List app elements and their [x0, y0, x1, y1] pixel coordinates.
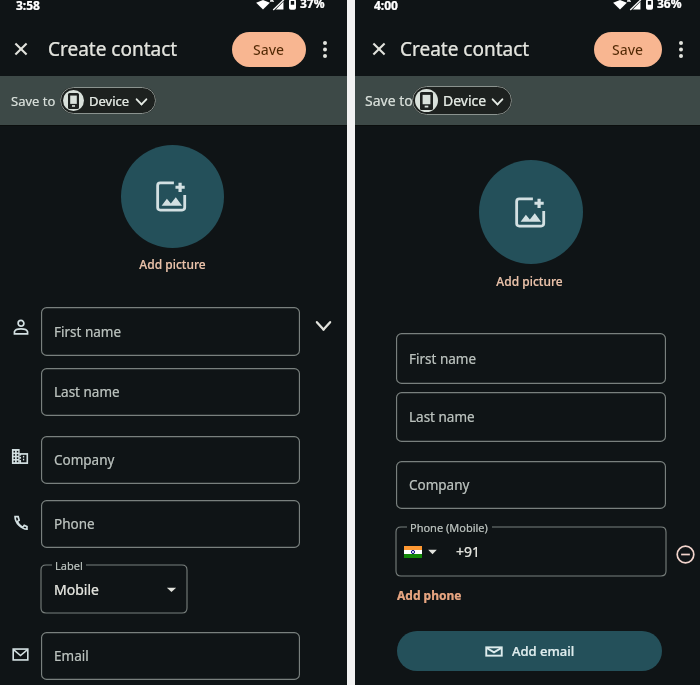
button[interactable]: First name: [396, 333, 666, 384]
staticText: Create contact: [48, 36, 178, 62]
button[interactable]: Save: [232, 32, 306, 67]
staticText: 37%: [300, 0, 325, 11]
staticText: Device: [89, 92, 130, 110]
button[interactable]: Label: [41, 565, 187, 613]
staticText: 3:58: [16, 0, 40, 13]
button[interactable]: Email: [41, 632, 300, 680]
button[interactable]: More options: [309, 33, 341, 65]
staticText: R: [627, 0, 631, 4]
staticText: 4:00: [374, 0, 398, 13]
button[interactable]: Close: [361, 31, 397, 67]
staticText: +91: [456, 542, 481, 561]
staticText: 36%: [657, 0, 682, 11]
button[interactable]: Close: [3, 31, 39, 67]
button[interactable]: Device: [60, 87, 156, 114]
staticText: Company: [54, 451, 115, 469]
staticText: R: [270, 0, 274, 4]
button[interactable]: Device: [412, 86, 512, 115]
staticText: Save to: [11, 92, 56, 110]
staticText: Last name: [54, 383, 120, 401]
button[interactable]: Add phone: [394, 583, 465, 607]
button[interactable]: Remove phone: [672, 541, 698, 567]
button[interactable]: First name: [41, 307, 300, 356]
staticText: Company: [409, 476, 470, 494]
staticText: Save: [612, 40, 644, 59]
button[interactable]: Expand name fields: [309, 312, 337, 340]
staticText: Add phone: [397, 587, 462, 603]
staticText: First name: [54, 323, 122, 341]
staticText: Add picture: [357, 273, 700, 289]
button[interactable]: Phone (Mobile): [396, 527, 666, 576]
staticText: Mobile: [54, 580, 99, 599]
staticText: Save: [253, 40, 285, 59]
staticText: Device: [443, 91, 487, 110]
staticText: Create contact: [400, 36, 530, 62]
button[interactable]: Company: [396, 461, 666, 509]
button[interactable]: Save: [594, 32, 662, 67]
staticText: Add email: [512, 642, 575, 660]
staticText: Save to: [365, 91, 413, 110]
button[interactable]: More options: [665, 33, 697, 65]
staticText: Phone: [54, 515, 95, 533]
staticText: Add picture: [0, 256, 345, 272]
staticText: Label: [55, 558, 83, 573]
staticText: Phone (Mobile): [410, 520, 488, 535]
staticText: Email: [54, 647, 89, 665]
staticText: First name: [409, 350, 477, 368]
button[interactable]: Add email: [397, 631, 662, 671]
button[interactable]: Phone: [41, 500, 300, 548]
button[interactable]: Last name: [396, 392, 666, 442]
staticText: Last name: [409, 408, 475, 426]
button[interactable]: Last name: [41, 368, 300, 416]
button[interactable]: Add picture: [121, 145, 224, 248]
button[interactable]: Add picture: [479, 160, 583, 264]
button[interactable]: Company: [41, 436, 300, 484]
